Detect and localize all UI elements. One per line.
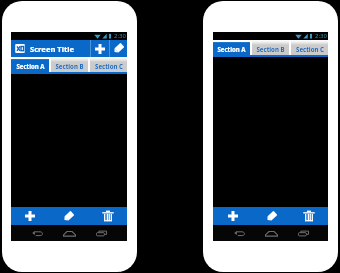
button[interactable]: Add bbox=[213, 207, 252, 225]
button[interactable]: Delete bbox=[290, 207, 328, 225]
button[interactable]: Section A bbox=[213, 40, 250, 55]
button[interactable]: Home bbox=[53, 225, 85, 241]
button[interactable]: Edit bbox=[49, 207, 88, 225]
button[interactable]: Edit bbox=[110, 40, 127, 57]
button[interactable]: Delete bbox=[88, 207, 127, 225]
button[interactable]: Add bbox=[91, 40, 109, 57]
button[interactable]: Add bbox=[11, 207, 49, 225]
staticText: Section C bbox=[95, 62, 123, 70]
staticText: 2:30 bbox=[114, 32, 126, 40]
button[interactable]: Back bbox=[223, 225, 255, 241]
button[interactable]: Section B bbox=[51, 57, 88, 72]
button[interactable]: Recents bbox=[287, 225, 319, 241]
button[interactable]: Section C bbox=[291, 40, 328, 55]
button[interactable]: Edit bbox=[252, 207, 290, 225]
staticText: Section B bbox=[256, 45, 285, 53]
button[interactable]: Section B bbox=[252, 40, 289, 55]
button[interactable]: Back bbox=[21, 225, 53, 241]
button[interactable]: Section C bbox=[90, 57, 127, 72]
staticText: Section B bbox=[55, 62, 84, 70]
staticText: 2:30 bbox=[315, 32, 327, 40]
staticText: Screen Title bbox=[30, 44, 90, 54]
staticText: Section A bbox=[217, 45, 246, 53]
button[interactable]: Home bbox=[255, 225, 287, 241]
staticText: Section A bbox=[16, 62, 45, 70]
button[interactable]: Recents bbox=[85, 225, 117, 241]
staticText: Section C bbox=[296, 45, 324, 53]
button[interactable]: Section A bbox=[11, 57, 49, 72]
